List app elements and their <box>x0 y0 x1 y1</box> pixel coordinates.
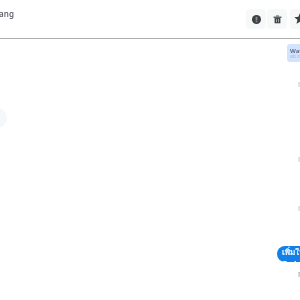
staticText: n <box>298 268 300 279</box>
staticText: Wat <box>290 47 300 55</box>
button[interactable]: Delete <box>267 9 287 29</box>
button[interactable]: เพิ่มใน Tasks <box>277 246 300 262</box>
staticText: n <box>298 202 300 213</box>
button[interactable]: uang <box>0 3 14 24</box>
staticText: uang <box>0 8 14 19</box>
button[interactable]: Star <box>290 9 300 29</box>
staticText: ab cd <box>290 53 300 60</box>
staticText: เพิ่มใน Tasks <box>282 246 300 262</box>
button[interactable]: Report spam <box>246 9 266 29</box>
staticText: n <box>298 153 300 164</box>
button[interactable]: Message <box>287 44 300 62</box>
staticText: n <box>298 78 300 89</box>
